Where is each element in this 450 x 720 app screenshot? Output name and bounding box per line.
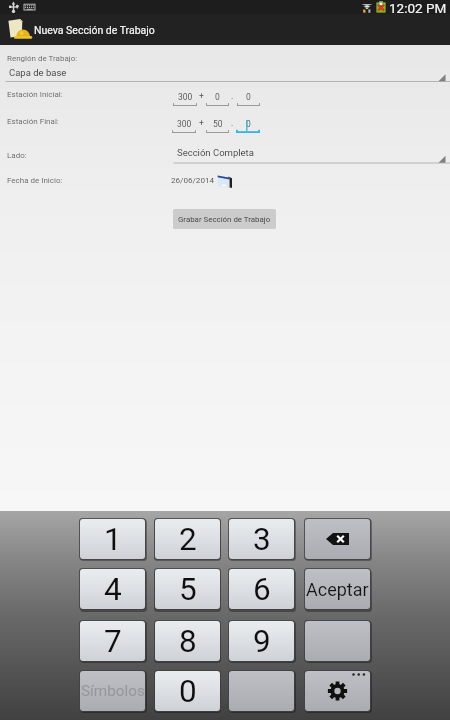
button[interactable]: 8	[155, 621, 220, 661]
button[interactable]	[305, 621, 370, 661]
button[interactable]: 0	[236, 119, 260, 133]
staticText: .	[231, 91, 234, 101]
button[interactable]: 1	[80, 519, 145, 559]
staticText: 4	[104, 571, 122, 608]
button[interactable]: 0	[155, 671, 220, 711]
button[interactable]: 9	[229, 621, 294, 661]
button[interactable]: 2	[155, 519, 220, 559]
staticText: 0	[215, 92, 220, 102]
staticText: Nueva Sección de Trabajo	[34, 24, 155, 36]
button[interactable]: 300	[172, 119, 196, 133]
other: Borrar	[326, 533, 349, 545]
staticText: 8	[179, 623, 197, 660]
staticText: Símbolos	[81, 682, 145, 700]
button[interactable]: Símbolos	[80, 671, 145, 711]
staticText: Fecha de Inicio:	[7, 176, 63, 185]
button[interactable]: 0	[206, 92, 229, 106]
button[interactable]: Ajustes	[305, 671, 370, 711]
staticText: Grabar Sección de Trabajo	[178, 215, 271, 224]
staticText: 26/06/2014	[171, 175, 215, 184]
staticText: 50	[213, 119, 223, 129]
staticText: 2	[179, 521, 197, 558]
staticText: Lado:	[7, 151, 27, 160]
staticText: 1	[104, 521, 122, 558]
staticText: 300	[178, 92, 193, 102]
button[interactable]: 3	[229, 519, 294, 559]
button[interactable]: 300	[173, 92, 197, 106]
button[interactable]: Borrar	[305, 519, 370, 559]
staticText: 0	[246, 119, 251, 129]
staticText: .	[231, 118, 234, 128]
staticText: 7	[104, 623, 122, 660]
button[interactable]	[229, 671, 294, 711]
staticText: 0	[246, 92, 251, 102]
staticText: +	[199, 118, 204, 128]
button[interactable]: 7	[80, 621, 145, 661]
staticText: 0	[179, 673, 197, 710]
staticText: Renglón de Trabajo:	[7, 54, 78, 63]
staticText: 5	[179, 571, 197, 608]
staticText: Aceptar	[306, 579, 369, 600]
staticText: Estación Inicial:	[7, 90, 63, 99]
staticText: 3	[253, 521, 271, 558]
staticText: +	[199, 91, 204, 101]
button[interactable]: 50	[206, 119, 229, 133]
button[interactable]: Sección Completa	[173, 147, 450, 163]
button[interactable]: Nueva Sección de Trabajo	[0, 14, 450, 45]
staticText: Sección Completa	[177, 147, 254, 158]
other: Ajustes	[305, 671, 370, 711]
button[interactable]: 5	[155, 569, 220, 609]
staticText: Capa de base	[9, 67, 67, 78]
staticText: Estación Final:	[7, 117, 59, 126]
staticText: 300	[177, 119, 192, 129]
button[interactable]: 6	[229, 569, 294, 609]
button[interactable]: Capa de base	[0, 66, 450, 82]
button[interactable]: 0	[237, 92, 260, 106]
button[interactable]: 4	[80, 569, 145, 609]
staticText: 12:02 PM	[389, 0, 447, 14]
staticText: 9	[253, 623, 271, 660]
button[interactable]: Grabar Sección de Trabajo	[173, 209, 276, 229]
button[interactable]: Aceptar	[305, 569, 370, 609]
staticText: 6	[253, 571, 271, 608]
button[interactable]: Seleccionar fecha	[216, 174, 233, 188]
